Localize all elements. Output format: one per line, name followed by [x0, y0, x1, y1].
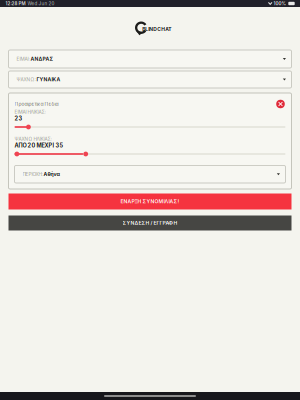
staticText: ΑΠΟ 20 ΜΕΧΡΙ 35	[14, 142, 63, 149]
staticText: ΕΝΑΡΞΗ ΣΥΝΟΜΙΛΙΑΣ!	[120, 198, 179, 204]
staticText	[42, 171, 43, 177]
button[interactable]: ΨΑΧΝΩ:	[8, 71, 291, 88]
staticText: 12:28 PM	[5, 1, 25, 6]
button[interactable]: ΕΝΑΡΞΗ ΣΥΝΟΜΙΛΙΑΣ!	[8, 193, 291, 209]
staticText: ΓΥΝΑΙΚΑ	[36, 76, 60, 82]
staticText: ΕΙΜΑΙ:	[16, 56, 29, 62]
staticText: 100%	[272, 1, 286, 6]
staticText: ΣΥΝΔΕΣΗ / ΕΓΓΡΑΦΗ	[122, 220, 177, 226]
staticText: Αθήνα	[43, 171, 60, 177]
button[interactable]: ΠΕΡΙΟΧΗ:	[14, 165, 285, 183]
staticText: BLINDCHAT	[142, 26, 171, 32]
staticText: Wed Jun 20	[25, 1, 54, 6]
staticText: ΨΑΧΝΩ ΗΛΙΚΙΑΣ:	[14, 136, 51, 142]
staticText: ΠΕΡΙΟΧΗ:	[22, 171, 42, 177]
staticText: ΨΑΧΝΩ:	[16, 77, 35, 82]
staticText: ΑΝΔΡΑΣ	[30, 56, 53, 62]
button[interactable]: Απόκρυψη προαιρετικών πεδίων	[275, 99, 285, 109]
button[interactable]: ΣΥΝΔΕΣΗ / ΕΓΓΡΑΦΗ	[8, 215, 291, 230]
staticText: ΕΙΜΑΙ ΗΛΙΚΙΑΣ:	[14, 109, 45, 115]
staticText: Προαιρετικά Πεδία	[14, 101, 58, 107]
button[interactable]: ΕΙΜΑΙ:	[8, 50, 291, 68]
staticText: 23	[14, 115, 22, 122]
